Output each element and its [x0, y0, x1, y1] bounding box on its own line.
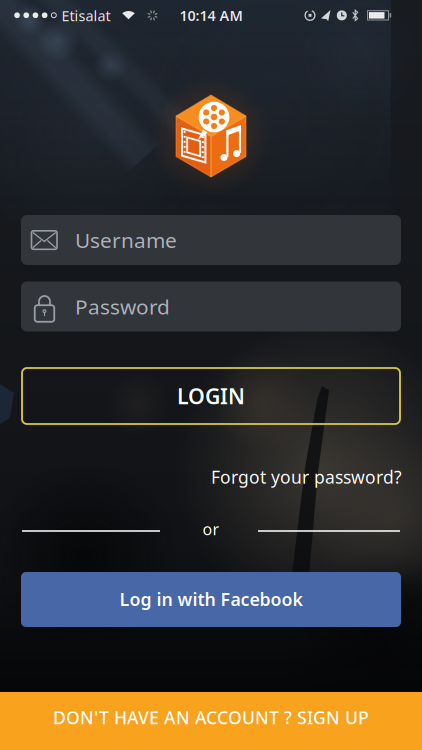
staticText: 10:14 AM: [179, 6, 242, 25]
staticText: Log in with Facebook: [119, 587, 302, 611]
staticText: Username: [75, 226, 177, 254]
staticText: DON'T HAVE AN ACCOUNT ? SIGN UP: [53, 705, 369, 729]
staticText: LOGIN: [177, 381, 245, 411]
staticText: or: [202, 518, 219, 540]
staticText: Password: [75, 292, 170, 321]
staticText: Forgot your password?: [211, 465, 402, 489]
staticText: Etisalat: [61, 6, 110, 25]
